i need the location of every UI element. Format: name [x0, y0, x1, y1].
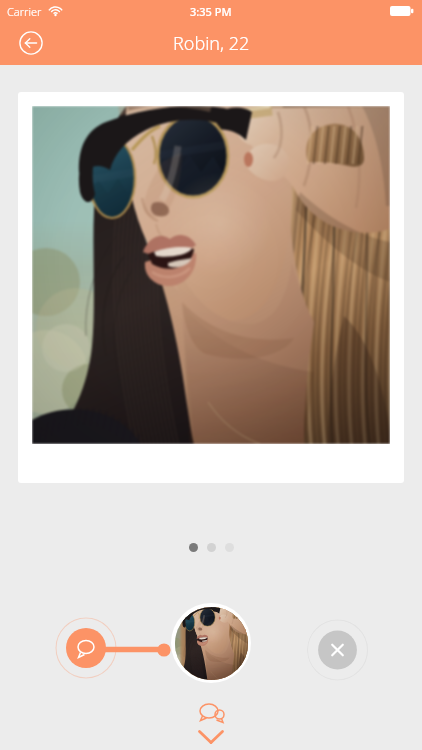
button[interactable]: Messages [187, 700, 235, 750]
button[interactable]: Back [16, 28, 46, 58]
staticText: 3:35 PM [190, 4, 232, 19]
button[interactable]: Dismiss [307, 619, 369, 681]
button[interactable]: Chat [55, 617, 117, 679]
staticText: Robin, 22 [173, 31, 250, 56]
staticText: Carrier [7, 4, 42, 19]
button[interactable]: Profile photo [171, 603, 251, 683]
